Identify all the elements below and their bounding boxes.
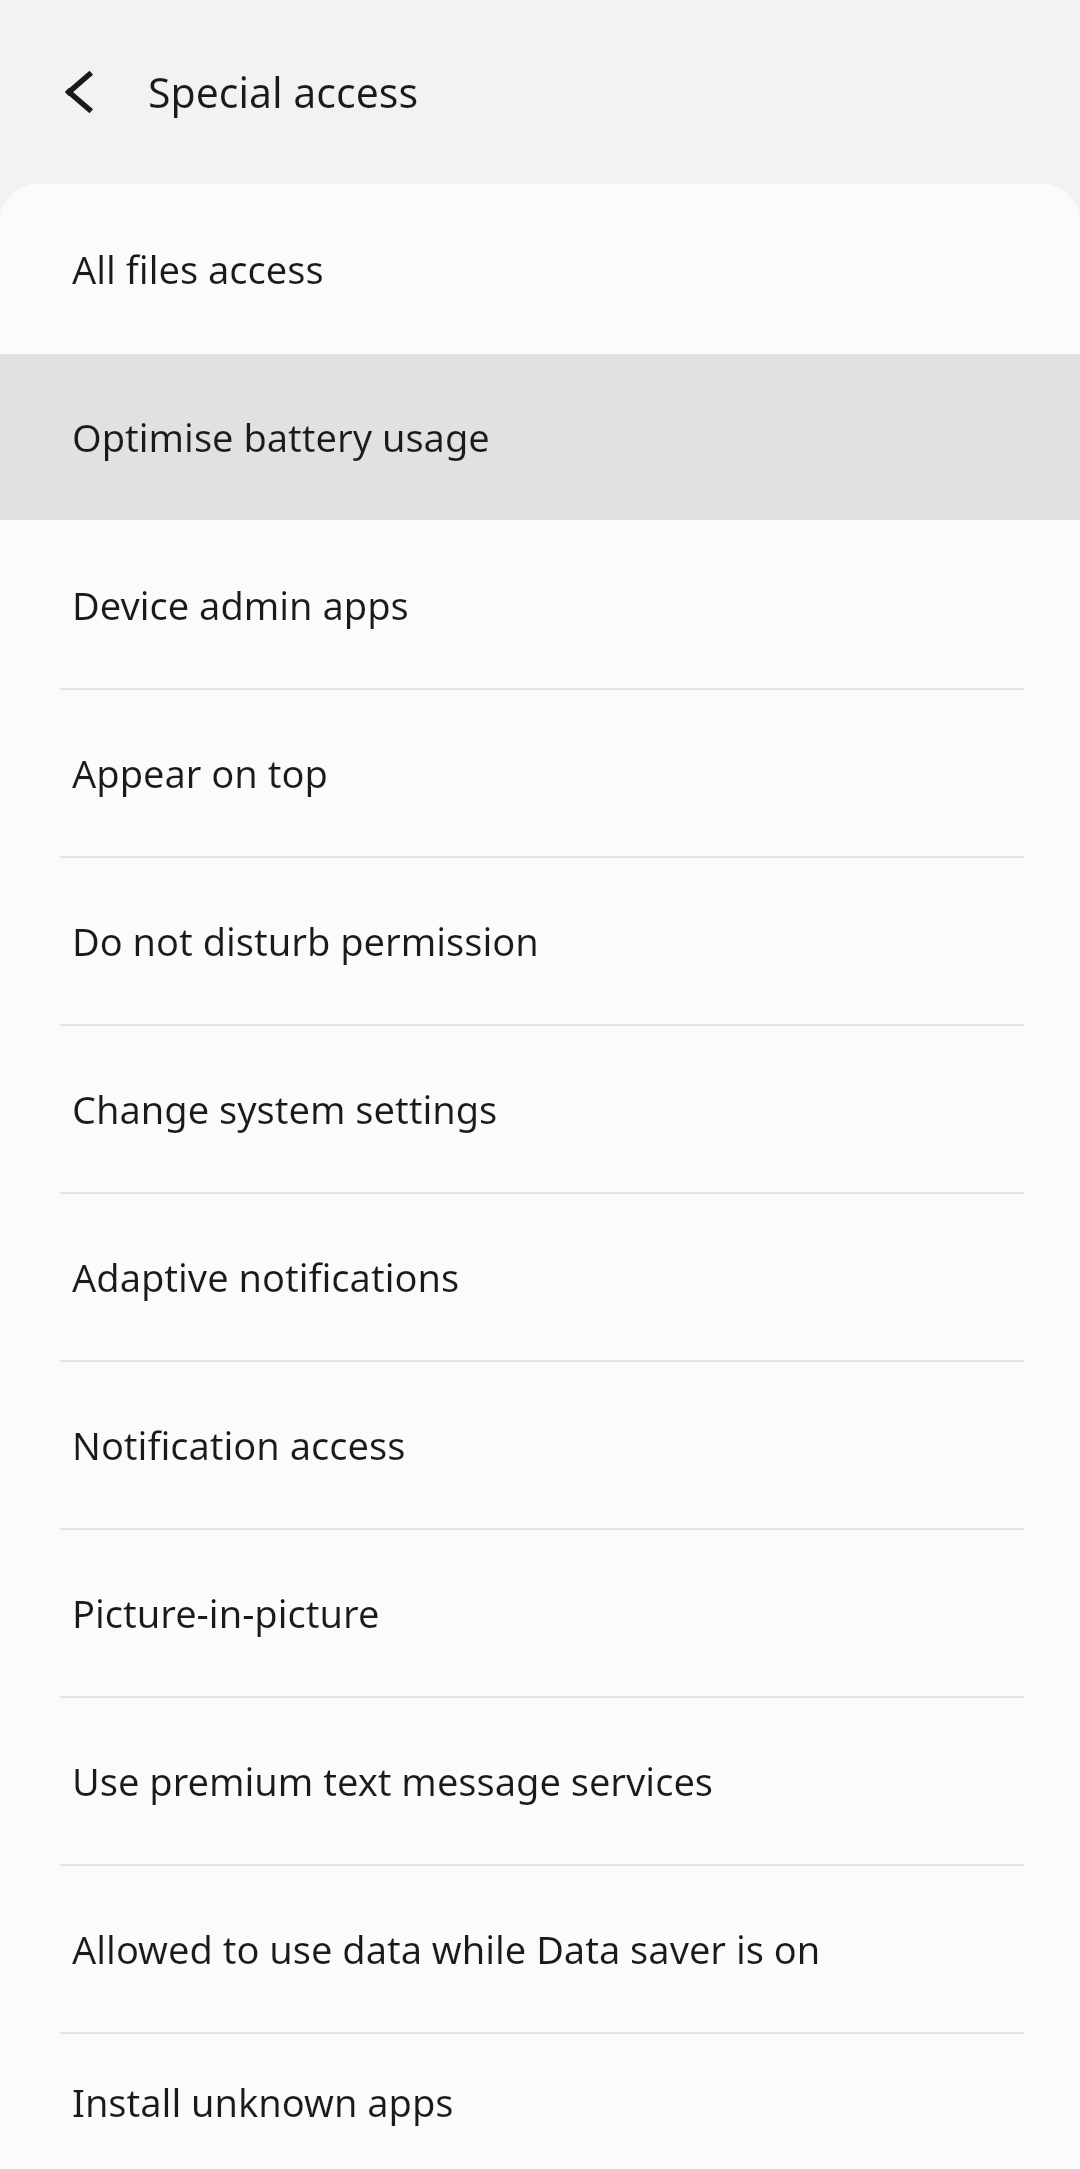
staticText: Use premium text message services	[72, 1755, 714, 1807]
staticText: Notification access	[72, 1419, 406, 1471]
button[interactable]: Allowed to use data while Data saver is …	[0, 1866, 1080, 2032]
staticText: Picture-in-picture	[72, 1587, 380, 1639]
staticText: Change system settings	[72, 1083, 498, 1135]
staticText: All files access	[72, 243, 324, 295]
staticText: Optimise battery usage	[72, 411, 490, 463]
button[interactable]: Change system settings	[0, 1026, 1080, 1192]
button[interactable]: Back	[40, 52, 120, 132]
button[interactable]: All files access	[0, 186, 1080, 352]
button[interactable]: Do not disturb permission	[0, 858, 1080, 1024]
button[interactable]: Install unknown apps	[0, 2034, 1080, 2169]
button[interactable]: Use premium text message services	[0, 1698, 1080, 1864]
button[interactable]: Adaptive notifications	[0, 1194, 1080, 1360]
button[interactable]: Appear on top	[0, 690, 1080, 856]
button[interactable]: Device admin apps	[0, 522, 1080, 688]
staticText: Special access	[148, 64, 419, 120]
staticText: Install unknown apps	[72, 2076, 454, 2128]
staticText: Allowed to use data while Data saver is …	[72, 1923, 821, 1975]
staticText: Appear on top	[72, 747, 328, 799]
staticText: Do not disturb permission	[72, 915, 539, 967]
staticText: Adaptive notifications	[72, 1251, 460, 1303]
staticText: Device admin apps	[72, 579, 409, 631]
button[interactable]: Picture-in-picture	[0, 1530, 1080, 1696]
button[interactable]: Optimise battery usage	[0, 354, 1080, 520]
button[interactable]: Notification access	[0, 1362, 1080, 1528]
